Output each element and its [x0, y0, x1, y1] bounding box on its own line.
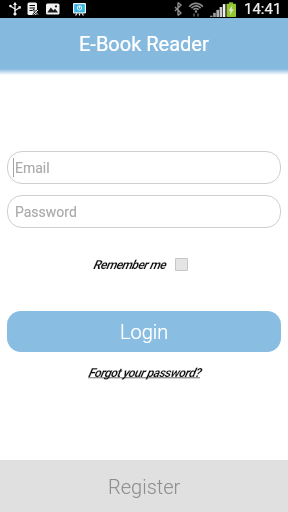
button[interactable]: Forgot your password? [88, 365, 200, 380]
staticText: Register [108, 475, 181, 498]
button[interactable]: Login [7, 311, 281, 352]
staticText: 14:41 [244, 0, 282, 18]
staticText: Login [120, 320, 169, 343]
staticText: Password [15, 204, 77, 220]
button[interactable]: Email [7, 151, 281, 184]
button[interactable]: Remember me [0, 257, 288, 272]
button[interactable]: Register [0, 460, 288, 512]
staticText: E-Book Reader [79, 32, 209, 55]
button[interactable]: Password [7, 195, 281, 228]
staticText: Remember me [93, 257, 166, 272]
staticText: Email [15, 160, 50, 176]
